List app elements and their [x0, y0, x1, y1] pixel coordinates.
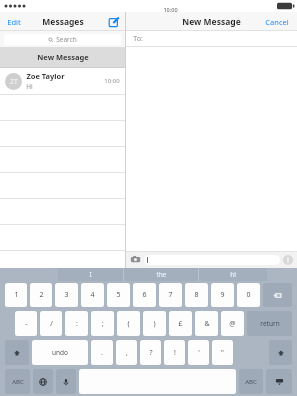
staticText: !: [174, 348, 176, 358]
staticText: New Message: [182, 16, 241, 28]
staticText: ": [221, 348, 224, 358]
button[interactable]: Camera: [130, 254, 141, 265]
staticText: 0: [246, 290, 251, 300]
button[interactable]: Dictation: [56, 369, 76, 394]
button[interactable]: (: [117, 311, 140, 336]
staticText: ': [198, 348, 200, 358]
button[interactable]: 1: [5, 283, 27, 307]
button[interactable]: ": [212, 340, 233, 365]
staticText: I: [89, 270, 92, 279]
button[interactable]: &: [195, 311, 218, 336]
staticText: :: [76, 319, 78, 329]
button[interactable]: Backspace: [263, 283, 292, 307]
button[interactable]: :: [65, 311, 88, 336]
staticText: 9: [220, 290, 225, 300]
button[interactable]: To:: [126, 31, 297, 46]
staticText: Cancel: [265, 17, 289, 27]
button[interactable]: [144, 255, 280, 265]
staticText: (: [127, 319, 130, 329]
staticText: return: [260, 319, 280, 328]
staticText: New Message: [37, 52, 89, 62]
button[interactable]: 2: [30, 283, 52, 307]
button[interactable]: ': [188, 340, 209, 365]
staticText: 2: [39, 290, 44, 300]
staticText: ABC: [245, 378, 257, 386]
button[interactable]: Edit: [5, 15, 23, 29]
staticText: ABC: [12, 378, 24, 386]
staticText: ): [153, 319, 156, 329]
staticText: Messages: [42, 16, 84, 28]
button[interactable]: ,: [116, 340, 137, 365]
staticText: To:: [133, 34, 143, 44]
staticText: Edit: [7, 17, 21, 27]
staticText: ?: [149, 348, 153, 358]
button[interactable]: return: [247, 311, 292, 336]
button[interactable]: I: [58, 268, 123, 281]
button[interactable]: .: [91, 340, 113, 365]
button[interactable]: 3: [55, 283, 78, 307]
button[interactable]: £: [169, 311, 192, 336]
button[interactable]: ABC: [5, 369, 30, 394]
staticText: undo: [52, 348, 68, 357]
button[interactable]: Hide keyboard: [266, 369, 292, 394]
button[interactable]: /: [40, 311, 62, 336]
staticText: 8: [194, 290, 199, 300]
button[interactable]: ): [143, 311, 166, 336]
button[interactable]: Shift: [269, 340, 292, 365]
staticText: ,: [126, 348, 128, 358]
button[interactable]: Compose new message: [108, 16, 120, 28]
button[interactable]: 9: [211, 283, 234, 307]
button[interactable]: -: [15, 311, 37, 336]
button[interactable]: Cancel: [263, 15, 291, 29]
button[interactable]: Search: [4, 34, 121, 45]
button[interactable]: ZT: [0, 68, 125, 94]
button[interactable]: Send: [283, 255, 293, 265]
staticText: ZT: [10, 77, 18, 86]
staticText: the: [156, 270, 167, 279]
staticText: Search: [56, 35, 77, 44]
button[interactable]: ABC: [239, 369, 263, 394]
button[interactable]: New Message: [0, 47, 125, 67]
staticText: /: [50, 319, 53, 329]
staticText: 10:00: [104, 77, 120, 85]
button[interactable]: Shift: [5, 340, 29, 365]
button[interactable]: @: [221, 311, 244, 336]
staticText: 3: [64, 290, 69, 300]
staticText: £: [178, 319, 183, 329]
staticText: 6: [142, 290, 147, 300]
button[interactable]: hi: [199, 268, 267, 281]
button[interactable]: ?: [140, 340, 161, 365]
staticText: &: [204, 319, 210, 329]
button[interactable]: 7: [159, 283, 182, 307]
button[interactable]: !: [164, 340, 185, 365]
button[interactable]: 5: [107, 283, 130, 307]
button[interactable]: 0: [237, 283, 260, 307]
staticText: -: [25, 319, 28, 329]
staticText: hi: [230, 270, 236, 279]
button[interactable]: 8: [185, 283, 208, 307]
staticText: 10:00: [163, 6, 178, 12]
button[interactable]: undo: [32, 340, 88, 365]
button[interactable]: 6: [133, 283, 156, 307]
staticText: .: [101, 348, 103, 358]
button[interactable]: Change keyboard language: [33, 369, 53, 394]
staticText: 1: [14, 290, 19, 300]
staticText: ;: [102, 319, 104, 329]
button[interactable]: 4: [81, 283, 104, 307]
staticText: @: [229, 319, 236, 329]
staticText: Zoe Taylor: [26, 71, 65, 81]
button[interactable]: ;: [91, 311, 114, 336]
staticText: Hi: [26, 82, 33, 91]
button[interactable]: the: [124, 268, 198, 281]
staticText: 5: [116, 290, 121, 300]
staticText: 7: [168, 290, 173, 300]
staticText: 4: [90, 290, 95, 300]
